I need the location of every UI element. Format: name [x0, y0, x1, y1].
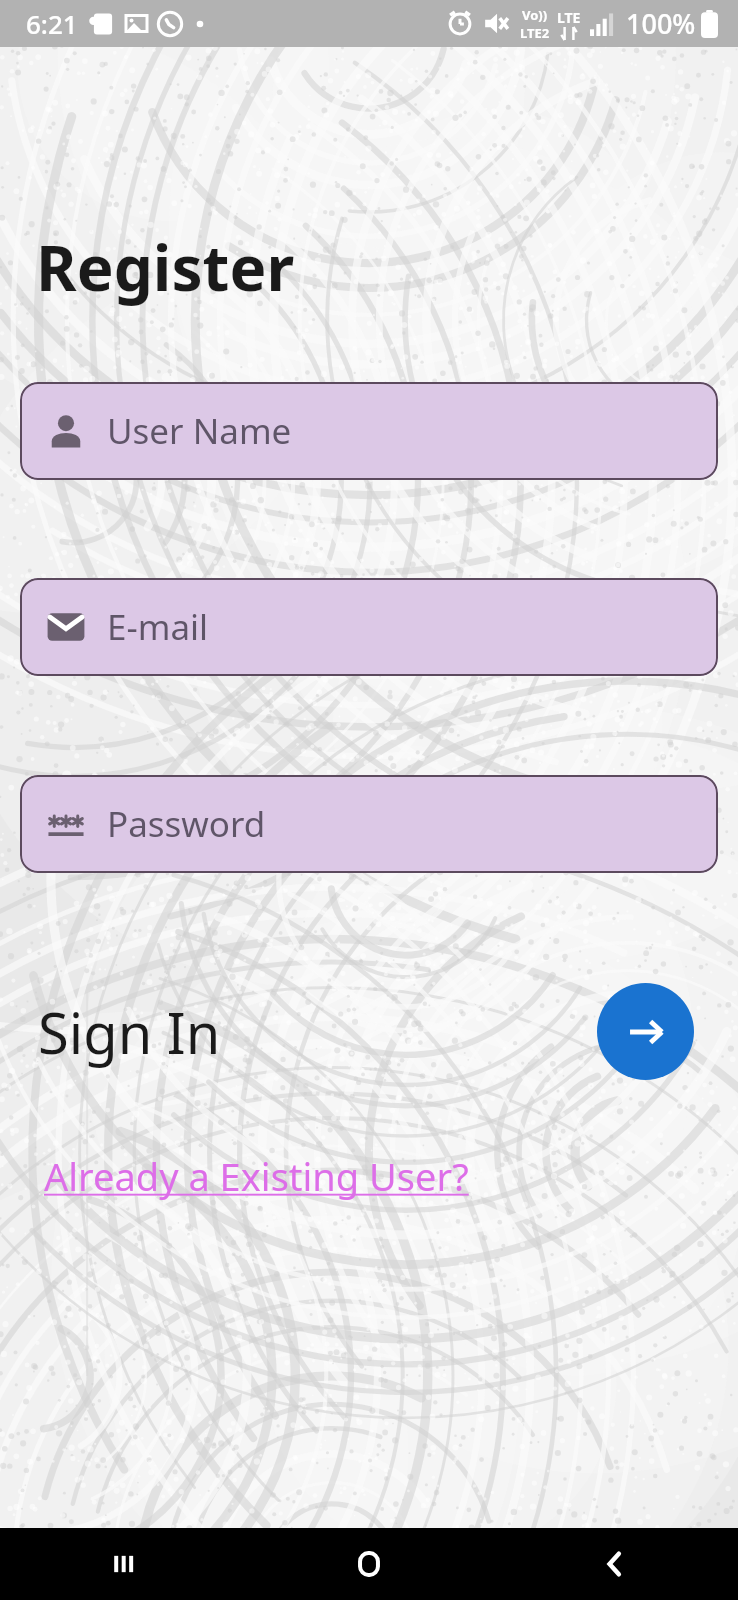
button[interactable]: Submit registration: [597, 983, 694, 1080]
button[interactable]: Back: [492, 1528, 738, 1600]
staticText: Password: [107, 800, 266, 848]
staticText: LTE2: [520, 24, 550, 42]
staticText: Vo)): [522, 6, 548, 24]
staticText: Register: [36, 225, 295, 309]
button[interactable]: Already a Existing User?: [44, 1150, 469, 1202]
button[interactable]: Recent apps: [0, 1528, 246, 1600]
button[interactable]: E-mail: [20, 578, 718, 676]
button[interactable]: User Name: [20, 382, 718, 480]
staticText: E-mail: [107, 603, 209, 651]
staticText: User Name: [107, 407, 292, 455]
button[interactable]: Home: [246, 1528, 492, 1600]
staticText: Already a Existing User?: [44, 1150, 469, 1202]
staticText: LTE: [557, 8, 581, 27]
button[interactable]: Password: [20, 775, 718, 873]
staticText: 6:21: [26, 6, 78, 41]
button[interactable]: Sign In: [38, 994, 221, 1070]
staticText: 100%: [626, 5, 696, 42]
